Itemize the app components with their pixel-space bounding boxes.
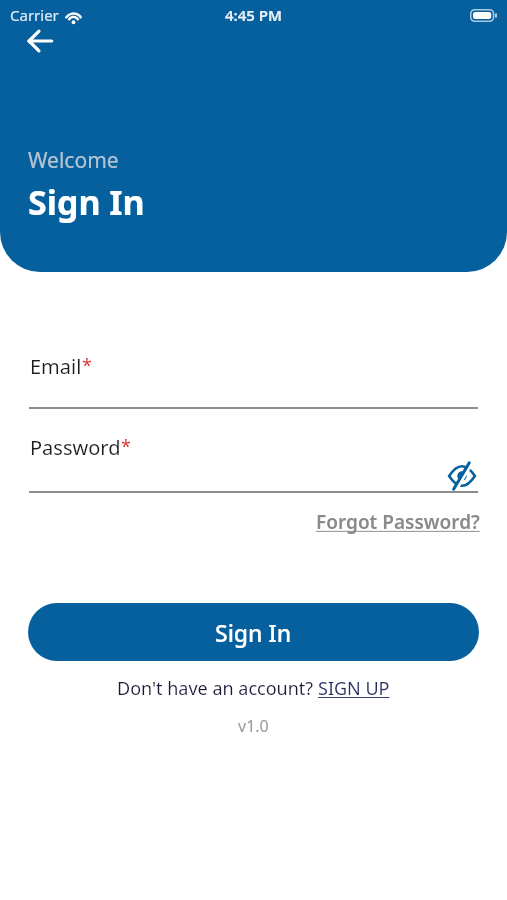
staticText: Password — [30, 434, 121, 461]
staticText: * — [121, 434, 131, 459]
staticText: Sign In — [215, 617, 292, 648]
button[interactable]: Sign In — [28, 603, 479, 661]
staticText: * — [82, 353, 92, 378]
staticText: Email — [30, 353, 82, 380]
staticText: v1.0 — [238, 715, 269, 737]
button[interactable]: Forgot Password? — [316, 509, 480, 535]
staticText: 4:45 PM — [225, 5, 282, 25]
button[interactable] — [20, 21, 60, 61]
staticText: Don't have an account? — [117, 676, 318, 701]
staticText: Carrier — [10, 5, 59, 25]
staticText: Sign In — [28, 179, 145, 225]
button[interactable]: SIGN UP — [318, 676, 390, 701]
staticText: Welcome — [28, 146, 119, 175]
button[interactable] — [447, 461, 477, 491]
